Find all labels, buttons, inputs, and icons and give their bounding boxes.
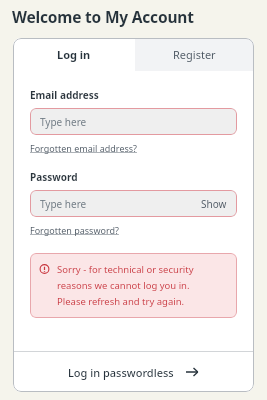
staticText: Register — [173, 47, 216, 62]
button[interactable]: Type here — [30, 190, 237, 217]
button[interactable]: Forgotten password? — [30, 224, 119, 236]
staticText: Email address — [30, 88, 99, 102]
staticText: Sorry - for technical or security — [57, 263, 194, 276]
button[interactable]: Show password — [201, 197, 227, 211]
staticText: Type here — [40, 197, 87, 211]
staticText: Show — [201, 197, 227, 211]
staticText: Type here — [40, 115, 87, 129]
staticText: Please refresh and try again. — [57, 295, 185, 308]
button[interactable]: Log in passwordless — [13, 352, 254, 392]
button[interactable]: Forgotten email address? — [30, 142, 137, 154]
button[interactable]: Type here — [30, 108, 237, 135]
staticText: Forgotten email address? — [30, 142, 137, 154]
staticText: Password — [30, 170, 78, 184]
staticText: Log in passwordless — [68, 365, 174, 380]
staticText: Forgotten password? — [30, 224, 119, 236]
staticText: reasons we cannot log you in. — [57, 279, 190, 292]
button[interactable]: Register — [135, 38, 254, 71]
button[interactable]: Log in — [13, 38, 135, 71]
staticText: Log in — [57, 47, 91, 62]
staticText: Welcome to My Account — [12, 6, 194, 27]
